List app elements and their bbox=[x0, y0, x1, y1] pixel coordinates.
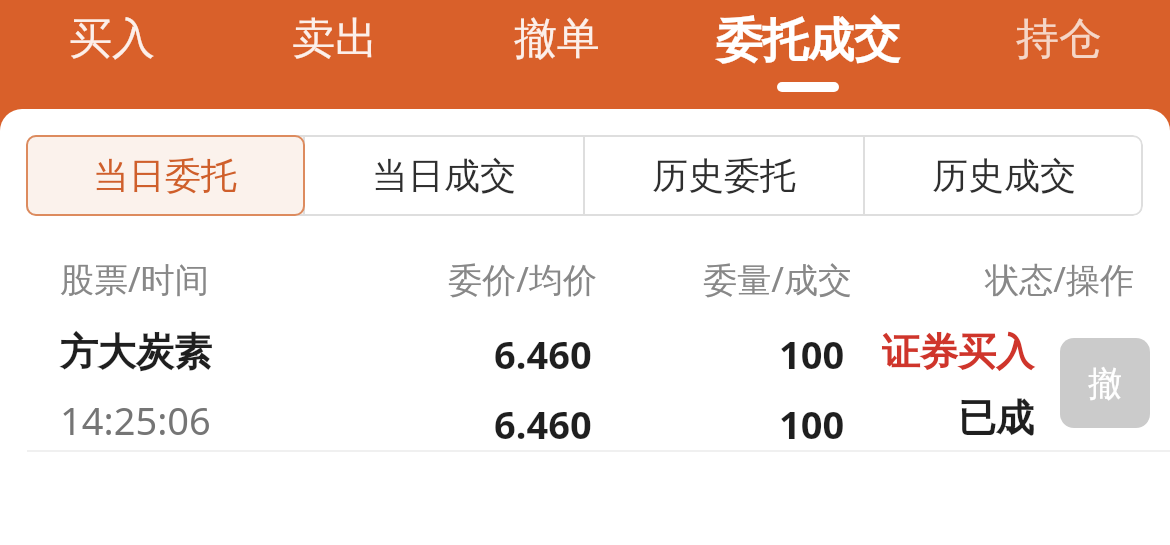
staticText: 历史成交 bbox=[932, 153, 1076, 198]
staticText: 买入 bbox=[69, 12, 155, 66]
staticText: 14:25:06 bbox=[60, 394, 211, 446]
staticText: 100 bbox=[779, 398, 845, 450]
staticText: 当日成交 bbox=[372, 153, 516, 198]
staticText: 当日委托 bbox=[93, 153, 237, 198]
button[interactable]: 卖出 bbox=[223, 0, 446, 109]
staticText: 状态/操作 bbox=[852, 256, 1134, 302]
staticText: 卖出 bbox=[292, 12, 378, 66]
staticText: 撤单 bbox=[514, 12, 600, 66]
staticText: 100 bbox=[779, 328, 845, 380]
staticText: 证券买入 bbox=[882, 328, 1034, 376]
staticText: 委价/均价 bbox=[328, 256, 597, 302]
staticText: 已成 bbox=[958, 394, 1034, 442]
button[interactable]: 当日成交 bbox=[305, 135, 583, 216]
button[interactable]: 撤单 bbox=[1060, 338, 1150, 428]
staticText: 股票/时间 bbox=[60, 256, 209, 302]
button[interactable]: 方大炭素 bbox=[0, 328, 1170, 450]
button[interactable]: 持仓 bbox=[948, 0, 1170, 109]
staticText: 方大炭素 bbox=[60, 328, 212, 376]
button[interactable]: 撤单 bbox=[446, 0, 668, 109]
staticText: 委托成交 bbox=[716, 12, 900, 70]
staticText: 撤 bbox=[1088, 362, 1122, 405]
staticText: 历史委托 bbox=[652, 153, 796, 198]
staticText: 持仓 bbox=[1016, 12, 1102, 66]
button[interactable]: 历史成交 bbox=[865, 135, 1143, 216]
button[interactable]: 买入 bbox=[0, 0, 223, 109]
button[interactable]: 委托成交 bbox=[668, 0, 948, 109]
staticText: 6.460 bbox=[494, 398, 592, 450]
staticText: 委量/成交 bbox=[597, 256, 852, 302]
button[interactable]: 历史委托 bbox=[585, 135, 863, 216]
button[interactable]: 当日委托 bbox=[26, 135, 303, 216]
staticText: 6.460 bbox=[494, 328, 592, 380]
